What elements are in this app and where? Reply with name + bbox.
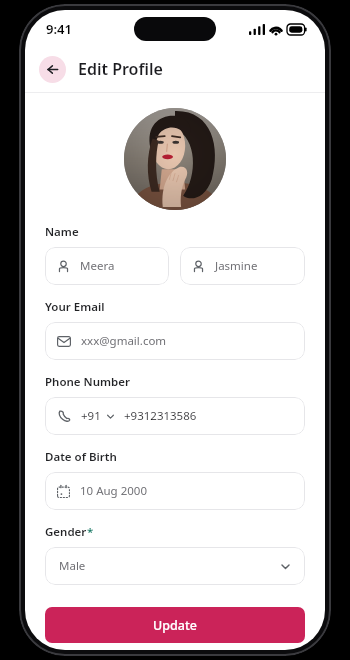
staticText: Edit Profile [78,58,163,80]
staticText: +9312313586 [124,408,197,424]
staticText: Your Email [45,299,105,315]
staticText: Phone Number [45,374,130,390]
staticText: Update [153,617,197,634]
staticText: Meera [80,258,115,274]
staticText: Date of Birth [45,449,117,465]
button[interactable]: +91 [45,397,305,435]
staticText: Jasmine [215,258,258,274]
staticText: xxx@gmail.com [81,333,167,349]
staticText: Male [59,558,86,574]
staticText: Name [45,224,79,240]
button[interactable]: Jasmine [180,247,305,285]
button[interactable]: Male [45,547,305,585]
staticText: * [87,524,94,540]
staticText: Gender [45,524,87,540]
button[interactable]: xxx@gmail.com [45,322,305,360]
button[interactable]: 10 Aug 2000 [45,472,305,510]
button[interactable]: Back [39,56,66,83]
staticText: 10 Aug 2000 [80,483,147,499]
staticText: +91 [81,408,101,424]
button[interactable]: Profile photo [124,108,226,210]
button[interactable]: Meera [45,247,169,285]
button[interactable]: Update [45,607,305,643]
staticText: 9:41 [46,20,72,38]
